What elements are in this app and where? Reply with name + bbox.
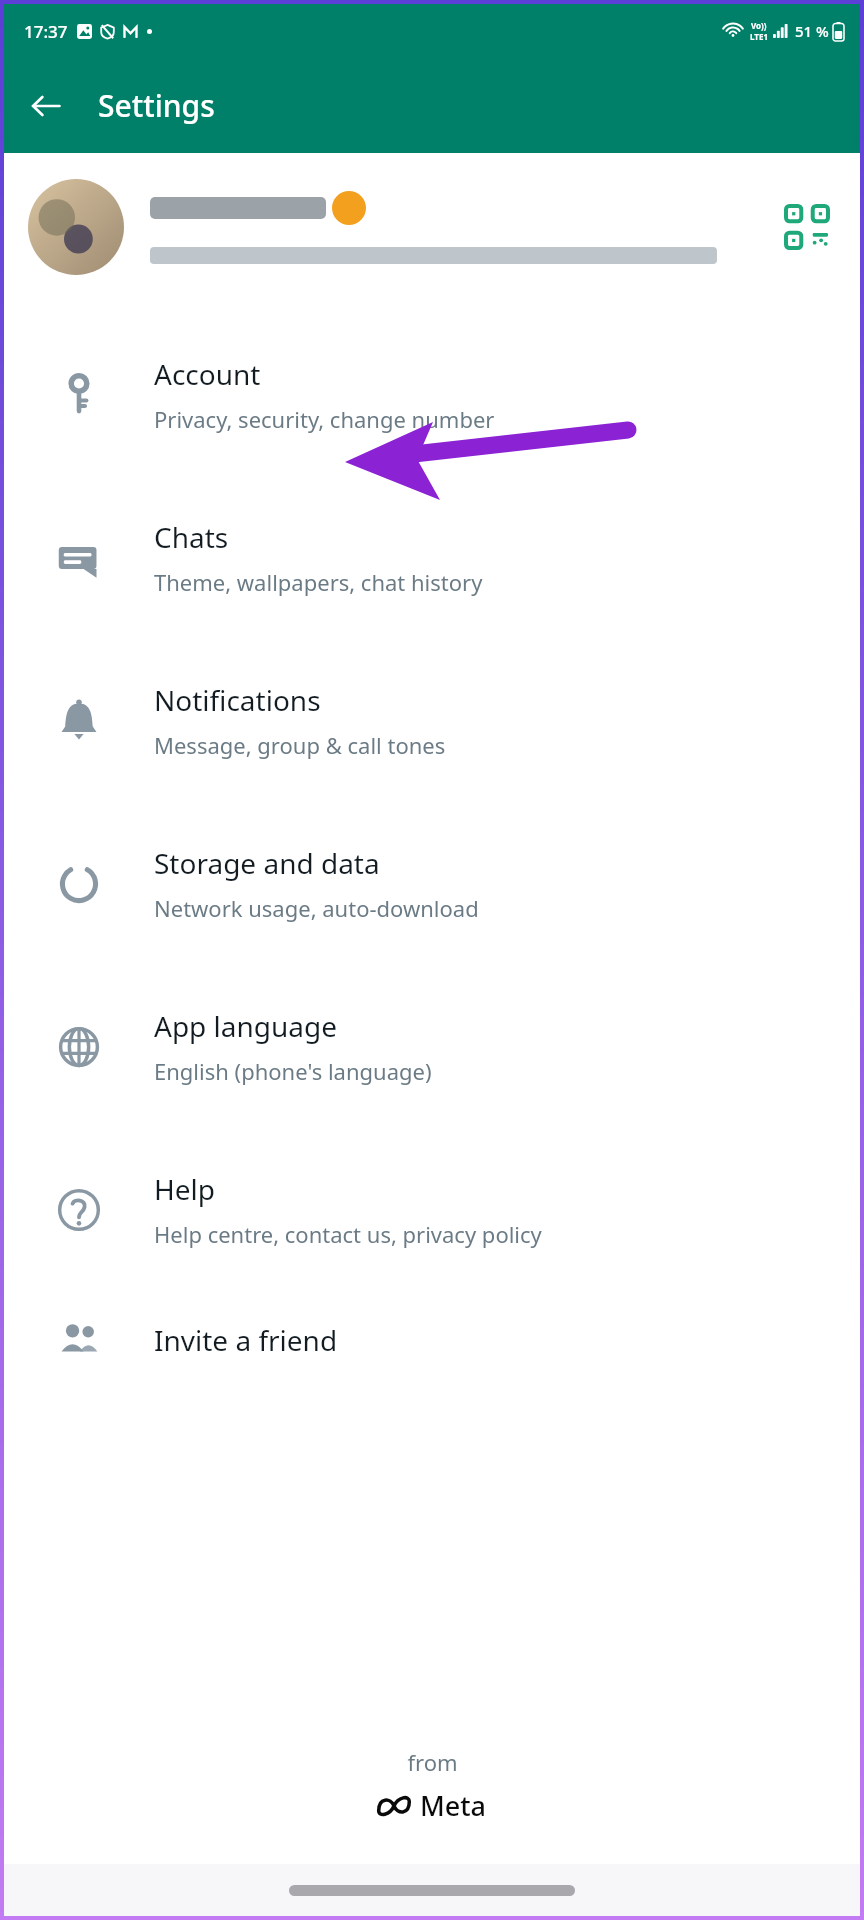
staticText: Account bbox=[154, 355, 261, 393]
staticText: Vo)) bbox=[751, 20, 767, 31]
staticText: from bbox=[407, 1747, 458, 1777]
staticText: Help bbox=[154, 1170, 215, 1208]
button[interactable]: Invite a friend bbox=[4, 1291, 860, 1389]
button[interactable]: App language bbox=[4, 965, 860, 1128]
staticText: Privacy, security, change number bbox=[154, 404, 495, 434]
staticText: Settings bbox=[98, 85, 215, 126]
staticText: Network usage, auto-download bbox=[154, 893, 479, 923]
button[interactable]: Account bbox=[4, 313, 860, 476]
button[interactable]: Back bbox=[18, 78, 74, 134]
staticText: Invite a friend bbox=[154, 1321, 338, 1359]
staticText: Storage and data bbox=[154, 844, 380, 882]
staticText: Chats bbox=[154, 518, 229, 556]
staticText: Meta bbox=[420, 1787, 487, 1824]
button[interactable]: Chats bbox=[4, 476, 860, 639]
staticText: Help centre, contact us, privacy policy bbox=[154, 1219, 542, 1249]
staticText: Notifications bbox=[154, 681, 321, 719]
staticText: Theme, wallpapers, chat history bbox=[154, 567, 483, 597]
staticText: LTE1 bbox=[750, 31, 768, 42]
button[interactable]: QR code bbox=[778, 198, 836, 256]
staticText: 51 % bbox=[795, 21, 829, 41]
button[interactable]: Help bbox=[4, 1128, 860, 1291]
staticText: App language bbox=[154, 1007, 338, 1045]
staticText: Message, group & call tones bbox=[154, 730, 446, 760]
staticText: 17:37 bbox=[24, 20, 68, 43]
button[interactable]: Storage and data bbox=[4, 802, 860, 965]
button[interactable]: Notifications bbox=[4, 639, 860, 802]
staticText: English (phone's language) bbox=[154, 1056, 432, 1086]
button[interactable]: QR code bbox=[4, 153, 860, 301]
